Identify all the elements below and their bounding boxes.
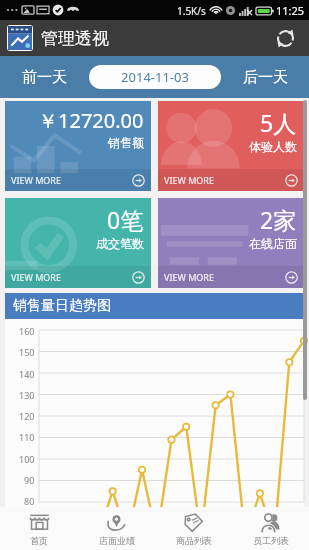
button[interactable]: 后一天: [221, 56, 309, 98]
staticText: ￥12720.00: [38, 107, 144, 134]
staticText: 160: [19, 325, 35, 337]
button[interactable]: 2家: [158, 198, 304, 288]
button[interactable]: 0笔: [5, 198, 151, 288]
staticText: 0笔: [107, 204, 144, 235]
staticText: 1.5K/s: [177, 4, 206, 18]
staticText: 体验人数: [249, 139, 297, 154]
staticText: VIEW MORE: [11, 174, 61, 186]
staticText: 11:25: [276, 3, 305, 18]
staticText: 80: [24, 495, 35, 507]
button[interactable]: App icon: [7, 25, 33, 51]
staticText: 90: [24, 474, 35, 486]
staticText: 110: [19, 431, 35, 443]
button[interactable]: ￥12720.00: [5, 101, 151, 191]
staticText: 130: [19, 389, 35, 401]
button[interactable]: 员工列表: [232, 507, 309, 550]
staticText: VIEW MORE: [164, 174, 214, 186]
staticText: 100: [19, 453, 35, 465]
button[interactable]: 前一天: [0, 56, 89, 98]
button[interactable]: 首页: [0, 507, 78, 550]
button[interactable]: 5人: [158, 101, 304, 191]
button[interactable]: 店面业绩: [78, 507, 155, 550]
staticText: VIEW MORE: [164, 271, 214, 283]
staticText: 前一天: [22, 68, 67, 87]
staticText: 后一天: [243, 68, 288, 87]
staticText: 商品列表: [176, 535, 212, 546]
staticText: 2家: [260, 204, 297, 235]
button[interactable]: 2014-11-03: [89, 65, 221, 89]
staticText: 5人: [260, 107, 297, 138]
staticText: 店面业绩: [99, 535, 135, 546]
staticText: 首页: [30, 535, 48, 546]
button[interactable]: 销售量日趋势图: [5, 293, 304, 319]
staticText: 成交笔数: [96, 236, 144, 251]
staticText: 2014-11-03: [121, 68, 189, 86]
staticText: 在线店面: [249, 236, 297, 251]
staticText: 销售额: [108, 135, 144, 150]
button[interactable]: Refresh: [271, 24, 299, 52]
staticText: 员工列表: [253, 535, 289, 546]
staticText: 120: [19, 410, 35, 422]
staticText: 管理透视: [41, 28, 109, 49]
button[interactable]: 商品列表: [155, 507, 232, 550]
staticText: 140: [19, 368, 35, 380]
staticText: 150: [19, 346, 35, 358]
staticText: VIEW MORE: [11, 271, 61, 283]
staticText: 销售量日趋势图: [13, 297, 111, 315]
